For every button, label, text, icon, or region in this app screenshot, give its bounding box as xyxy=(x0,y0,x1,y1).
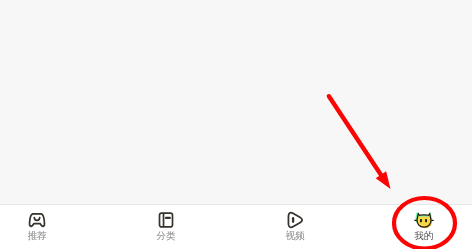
button[interactable]: 我的 xyxy=(396,206,452,249)
button[interactable]: 视频 xyxy=(267,206,323,249)
button[interactable]: 分类 xyxy=(138,206,194,249)
staticText: 视频 xyxy=(285,230,305,242)
staticText: 分类 xyxy=(156,230,176,242)
staticText: 推荐 xyxy=(27,230,47,242)
staticText: 我的 xyxy=(414,230,434,242)
button[interactable]: 推荐 xyxy=(9,206,65,249)
